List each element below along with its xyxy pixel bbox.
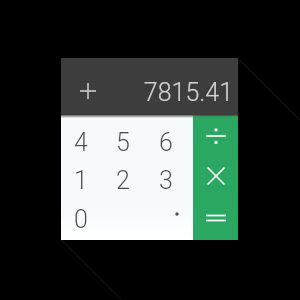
button[interactable]: 0 [61,198,105,240]
button[interactable]: Equals [193,198,238,240]
button[interactable]: 1 [61,157,105,199]
button[interactable]: Divide [193,115,238,157]
button[interactable]: 6 [149,115,193,157]
staticText: 6 [159,128,173,157]
staticText: 5 [116,128,130,157]
staticText: 2 [116,166,130,195]
button[interactable]: Multiply [193,157,238,199]
other: Decimal point [171,208,183,220]
staticText: 7815.41 [61,78,233,107]
staticText: 4 [74,128,88,157]
button[interactable]: Pending operation: plus [61,58,238,115]
button[interactable]: 5 [105,115,149,157]
button[interactable]: 3 [149,157,193,199]
staticText: 3 [159,166,173,195]
staticText: 1 [74,166,88,195]
staticText: 0 [74,205,88,234]
other: Pending operation: plus [77,80,99,102]
button[interactable]: Decimal point [149,198,193,240]
button[interactable]: 2 [105,157,149,199]
button[interactable]: 4 [61,115,105,157]
